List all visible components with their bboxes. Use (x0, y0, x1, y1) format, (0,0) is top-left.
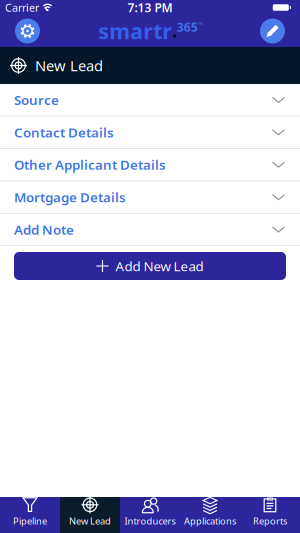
staticText: Introducers (124, 515, 175, 527)
staticText: Other Applicant Details (14, 156, 166, 173)
button[interactable]: Contact Details (0, 116, 300, 149)
staticText: Reports (253, 515, 287, 527)
staticText: Carrier (5, 0, 39, 15)
button[interactable]: Add Note (0, 214, 300, 246)
button[interactable]: Other Applicant Details (0, 149, 300, 181)
button[interactable]: Settings (15, 18, 40, 43)
staticText: 7:13 PM (127, 0, 172, 15)
staticText: Contact Details (14, 123, 114, 141)
staticText: Pipeline (13, 515, 47, 527)
button[interactable]: Pipeline (0, 497, 60, 533)
staticText: Mortgage Details (14, 188, 126, 206)
staticText: Source (14, 91, 59, 109)
button[interactable]: Mortgage Details (0, 181, 300, 214)
staticText: Add New Lead (115, 257, 203, 275)
button[interactable]: Add New Lead (14, 252, 286, 280)
staticText: Applications (184, 515, 236, 527)
button[interactable]: New Lead (60, 497, 120, 533)
staticText: smartr (98, 17, 172, 45)
staticText: New Lead (69, 515, 111, 527)
button[interactable]: Edit (260, 18, 285, 43)
button[interactable]: Applications (180, 497, 240, 533)
staticText: ™ (198, 21, 203, 29)
button[interactable]: Introducers (120, 497, 180, 533)
staticText: Add Note (14, 221, 74, 238)
staticText: 365 (177, 19, 198, 35)
staticText: New Lead (35, 56, 103, 75)
button[interactable]: Source (0, 84, 300, 116)
button[interactable]: Reports (240, 497, 300, 533)
